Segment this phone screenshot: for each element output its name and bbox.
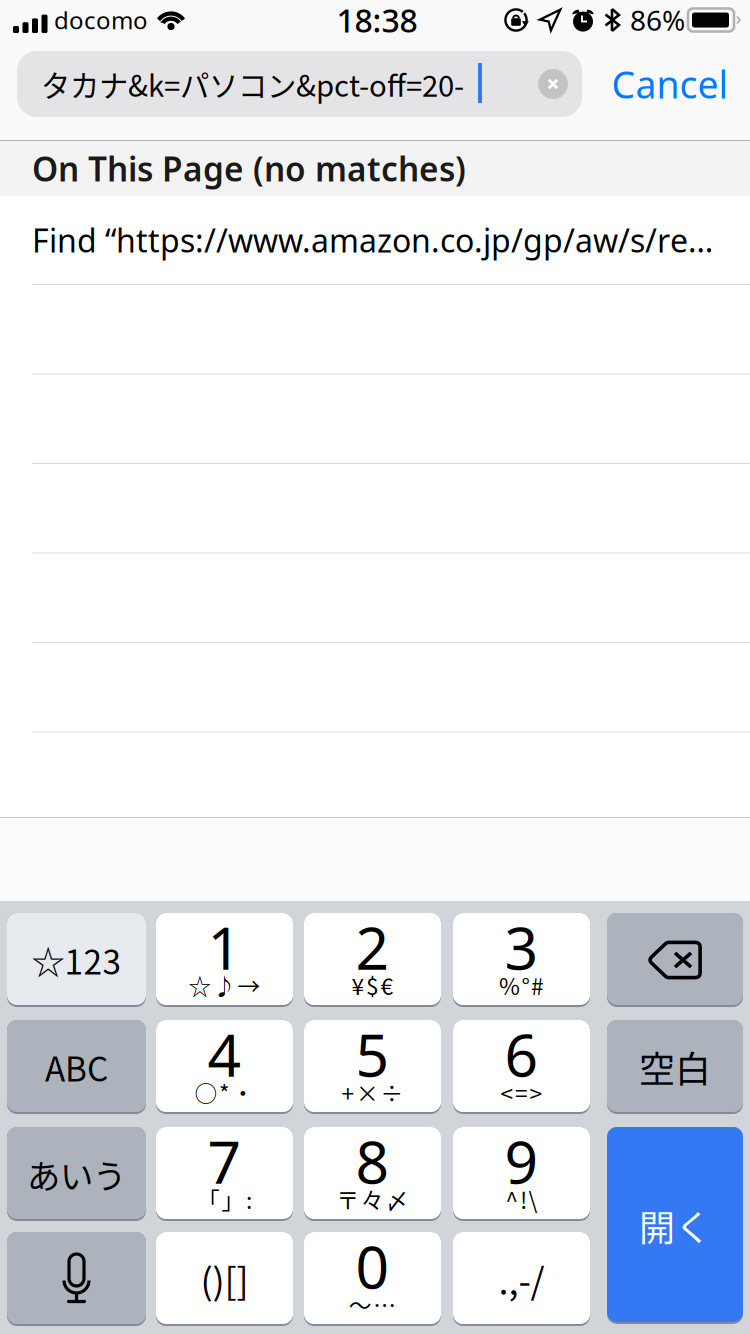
- button[interactable]: 3: [453, 913, 590, 1007]
- staticText: 4: [207, 1015, 241, 1093]
- staticText: %°#: [499, 969, 544, 1001]
- button[interactable]: 9: [453, 1127, 590, 1221]
- button[interactable]: 1: [156, 913, 293, 1007]
- staticText: ☆♪→: [188, 969, 260, 1001]
- button[interactable]: Clear text: [0, 0, 750, 1334]
- button[interactable]: 0: [304, 1232, 441, 1326]
- staticText: 3: [504, 908, 538, 986]
- staticText: 9: [504, 1122, 538, 1200]
- staticText: ^!\: [505, 1183, 537, 1215]
- staticText: docomo: [54, 4, 148, 36]
- staticText: +×÷: [341, 1076, 403, 1108]
- staticText: ☆123: [31, 936, 121, 984]
- staticText: 〒々〆: [336, 1183, 408, 1215]
- button[interactable]: [7, 1232, 146, 1326]
- staticText: ABC: [45, 1043, 108, 1091]
- button[interactable]: 空白: [607, 1020, 743, 1114]
- staticText: 1: [207, 908, 241, 986]
- button[interactable]: 4: [156, 1020, 293, 1114]
- staticText: 8: [355, 1122, 389, 1200]
- staticText: 5: [355, 1015, 389, 1093]
- staticText: 空白: [639, 1041, 711, 1093]
- button[interactable]: ()[]: [156, 1232, 293, 1326]
- button[interactable]: 5: [304, 1020, 441, 1114]
- button[interactable]: ABC: [7, 1020, 146, 1114]
- staticText: 2: [355, 908, 389, 986]
- staticText: 6: [504, 1015, 538, 1093]
- button[interactable]: .,-/: [453, 1232, 590, 1326]
- staticText: タカナ&k=パソコン&pct-off=20-: [41, 63, 464, 105]
- staticText: 86%: [630, 1, 685, 39]
- button[interactable]: ☆123: [7, 913, 146, 1007]
- button[interactable]: 6: [453, 1020, 590, 1114]
- button[interactable]: [607, 913, 743, 1007]
- staticText: あいう: [27, 1150, 126, 1198]
- staticText: .,-/: [498, 1253, 544, 1305]
- staticText: ¥$€: [351, 969, 393, 1001]
- button[interactable]: あいう: [7, 1127, 146, 1221]
- staticText: Cancel: [611, 59, 728, 109]
- button[interactable]: Cancel: [0, 0, 750, 1334]
- staticText: 18:38: [336, 0, 417, 41]
- button[interactable]: Find “https://www.amazon.co.jp/gp/aw/s/r…: [0, 0, 750, 1334]
- staticText: 開く: [639, 1199, 711, 1251]
- staticText: 7: [207, 1122, 241, 1200]
- button[interactable]: 8: [304, 1127, 441, 1221]
- staticText: Find “https://www.amazon.co.jp/gp/aw/s/r…: [32, 219, 713, 261]
- staticText: 0: [355, 1227, 389, 1305]
- staticText: On This Page (no matches): [32, 146, 466, 191]
- staticText: ()[]: [200, 1253, 248, 1305]
- button[interactable]: 2: [304, 913, 441, 1007]
- staticText: 〜…: [349, 1288, 396, 1320]
- staticText: 「」:: [197, 1183, 252, 1215]
- button[interactable]: 7: [156, 1127, 293, 1221]
- button[interactable]: 開く: [607, 1127, 743, 1324]
- staticText: <=>: [500, 1076, 542, 1108]
- staticText: ○*・: [194, 1076, 254, 1108]
